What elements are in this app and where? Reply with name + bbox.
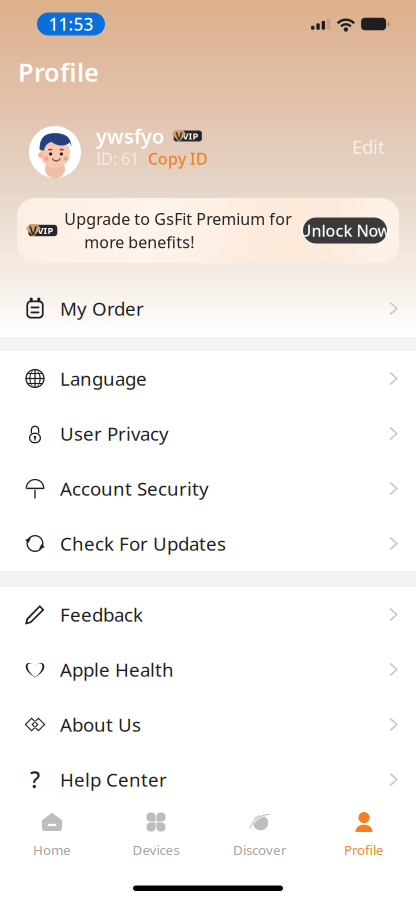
staticText: Profile [344,841,384,859]
staticText: Discover [233,841,287,859]
button[interactable]: Apple Health [0,642,416,697]
staticText: My Order [60,296,144,321]
staticText: 11:53 [48,12,93,35]
button[interactable]: User Privacy [0,406,416,461]
staticText: Language [60,366,147,391]
staticText: Account Security [60,476,209,501]
staticText: V [29,222,37,238]
button[interactable]: Language [0,351,416,406]
button[interactable]: Home [0,809,104,870]
staticText: ID: 61 [96,148,139,169]
button[interactable]: Profile [312,809,416,870]
staticText: Upgrade to GsFit Premium for [64,208,292,229]
button[interactable]: Account Security [0,461,416,516]
staticText: Profile [18,55,99,89]
button[interactable]: ? [0,752,416,807]
staticText: Check For Updates [60,531,226,556]
button[interactable]: About Us [0,697,416,752]
button[interactable]: My Order [0,281,416,336]
staticText: ? [30,764,40,794]
staticText: VIP [38,224,54,237]
staticText: About Us [60,712,141,737]
staticText: more benefits! [84,231,194,253]
button[interactable]: VIP [17,198,399,263]
button[interactable]: Discover [208,809,312,870]
button[interactable]: Devices [104,809,208,870]
staticText: Unlock Now [299,220,390,241]
button[interactable]: Edit [352,96,416,182]
staticText: V [175,129,182,143]
staticText: Copy ID [148,148,208,169]
staticText: ywsfyo [96,123,164,149]
staticText: Edit [352,134,385,159]
button[interactable]: Feedback [0,587,416,642]
staticText: User Privacy [60,421,169,446]
button[interactable]: Check For Updates [0,516,416,571]
staticText: Feedback [60,602,143,627]
staticText: Help Center [60,767,167,792]
staticText: Devices [132,841,179,859]
staticText: VIP [182,130,198,142]
staticText: Home [33,841,71,859]
staticText: Apple Health [60,657,174,682]
